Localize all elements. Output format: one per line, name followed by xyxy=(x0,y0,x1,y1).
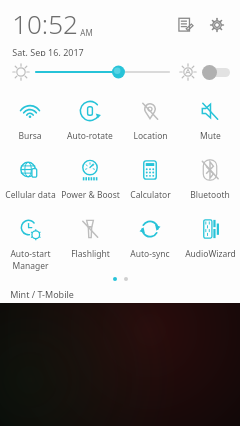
button[interactable]: Auto-rotate xyxy=(60,92,120,151)
staticText: Sat, Sep 16, 2017 xyxy=(12,46,84,56)
button[interactable]: Auto-start xyxy=(0,210,60,272)
staticText: Calculator xyxy=(130,189,171,201)
button[interactable]: AudioWizard xyxy=(180,210,240,272)
staticText: Bluetooth xyxy=(190,189,230,201)
staticText: Location xyxy=(133,130,168,142)
button[interactable]: Auto-sync xyxy=(120,210,180,272)
staticText: Mint / T-Mobile xyxy=(10,288,74,300)
staticText: AudioWizard xyxy=(185,248,236,260)
button[interactable]: Auto brightness xyxy=(177,61,199,83)
staticText: Bursa xyxy=(18,130,42,142)
button[interactable]: Power & Boost xyxy=(60,151,120,210)
button[interactable]: Edit quick settings xyxy=(172,12,198,38)
staticText: AM xyxy=(80,27,93,38)
staticText: Power & Boost xyxy=(61,189,120,201)
button[interactable]: Bluetooth xyxy=(180,151,240,210)
button[interactable]: Mute xyxy=(180,92,240,151)
button[interactable]: Calculator xyxy=(120,151,180,210)
staticText: Auto-sync xyxy=(130,248,170,260)
staticText: Auto-start xyxy=(10,248,51,260)
button[interactable]: Location xyxy=(120,92,180,151)
staticText: Auto-rotate xyxy=(67,130,113,142)
button[interactable]: Flashlight xyxy=(60,210,120,272)
button[interactable]: Cellular data xyxy=(0,151,60,210)
button[interactable]: Brightness slider xyxy=(36,61,169,83)
staticText: Manager xyxy=(12,260,49,272)
staticText: Mute xyxy=(200,130,221,142)
staticText: Flashlight xyxy=(71,248,110,260)
button[interactable]: Decrease brightness xyxy=(10,61,32,83)
button[interactable]: Bursa xyxy=(0,92,60,151)
button[interactable]: Auto brightness toggle xyxy=(202,64,230,80)
button[interactable]: Settings xyxy=(204,12,230,38)
staticText: Cellular data xyxy=(5,189,56,201)
staticText: 10:52 xyxy=(12,6,78,41)
